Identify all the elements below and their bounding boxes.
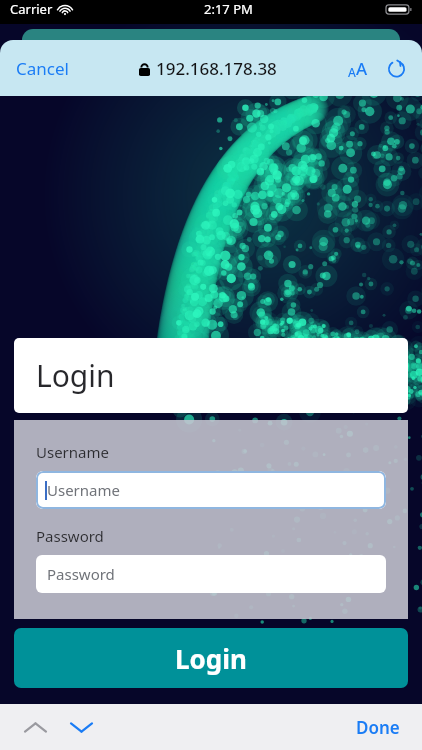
- staticText: Username: [47, 480, 120, 500]
- staticText: Login: [175, 641, 247, 676]
- button[interactable]: Login: [14, 628, 408, 688]
- button[interactable]: Next field: [64, 710, 98, 744]
- staticText: A: [356, 57, 368, 80]
- button[interactable]: Reload: [385, 57, 408, 80]
- staticText: 2:17 PM: [204, 0, 253, 18]
- staticText: Login: [36, 355, 115, 396]
- staticText: A: [348, 64, 356, 80]
- button[interactable]: Cancel: [14, 53, 71, 84]
- staticText: Password: [47, 564, 115, 584]
- button[interactable]: Password: [36, 555, 386, 593]
- staticText: Carrier: [10, 0, 53, 18]
- button[interactable]: Text size: [345, 54, 371, 83]
- staticText: 192.168.178.38: [156, 57, 277, 80]
- staticText: Cancel: [16, 57, 69, 80]
- button[interactable]: Previous field: [18, 710, 52, 744]
- staticText: Done: [356, 716, 400, 739]
- staticText: Username: [36, 442, 109, 462]
- button[interactable]: Username: [36, 471, 386, 509]
- button[interactable]: Done: [352, 711, 404, 744]
- staticText: Password: [36, 526, 104, 546]
